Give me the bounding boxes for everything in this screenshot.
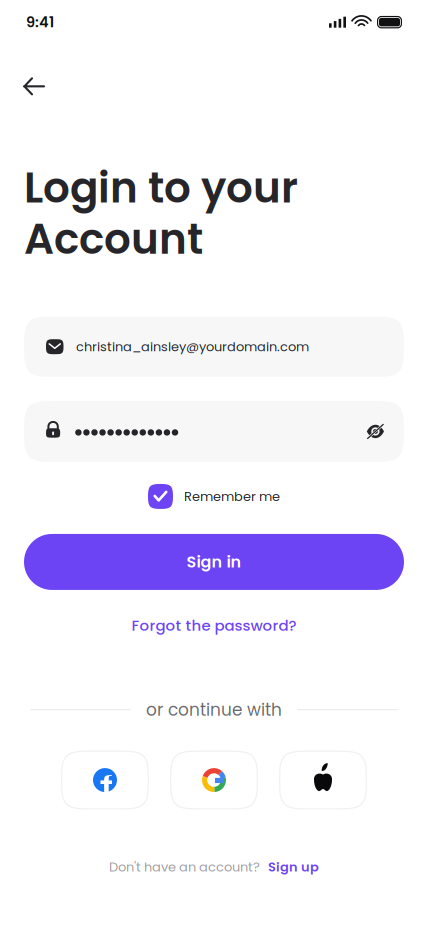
button[interactable]: Continue with Facebook bbox=[61, 751, 149, 810]
staticText: Remember me bbox=[184, 487, 280, 505]
staticText: or continue with bbox=[146, 698, 282, 722]
button[interactable]: Back bbox=[12, 66, 56, 106]
staticText: Sign up bbox=[268, 858, 319, 876]
staticText: 9:41 bbox=[26, 12, 54, 32]
button[interactable]: Sign in bbox=[24, 534, 404, 590]
button[interactable]: Show password bbox=[365, 421, 382, 442]
staticText: Sign in bbox=[186, 551, 241, 573]
button[interactable]: Remember me bbox=[148, 484, 280, 509]
button[interactable]: Forgot the password? bbox=[131, 615, 296, 636]
staticText: Account bbox=[24, 210, 203, 268]
button[interactable]: Sign up bbox=[268, 858, 319, 876]
staticText: Login to your bbox=[24, 158, 298, 217]
button[interactable]: Continue with Apple bbox=[279, 751, 367, 810]
button[interactable]: Continue with Google bbox=[170, 751, 258, 810]
staticText: christina_ainsley@yourdomain.com bbox=[76, 338, 309, 356]
staticText: Forgot the password? bbox=[131, 615, 296, 636]
staticText: Don't have an account? bbox=[109, 858, 260, 876]
